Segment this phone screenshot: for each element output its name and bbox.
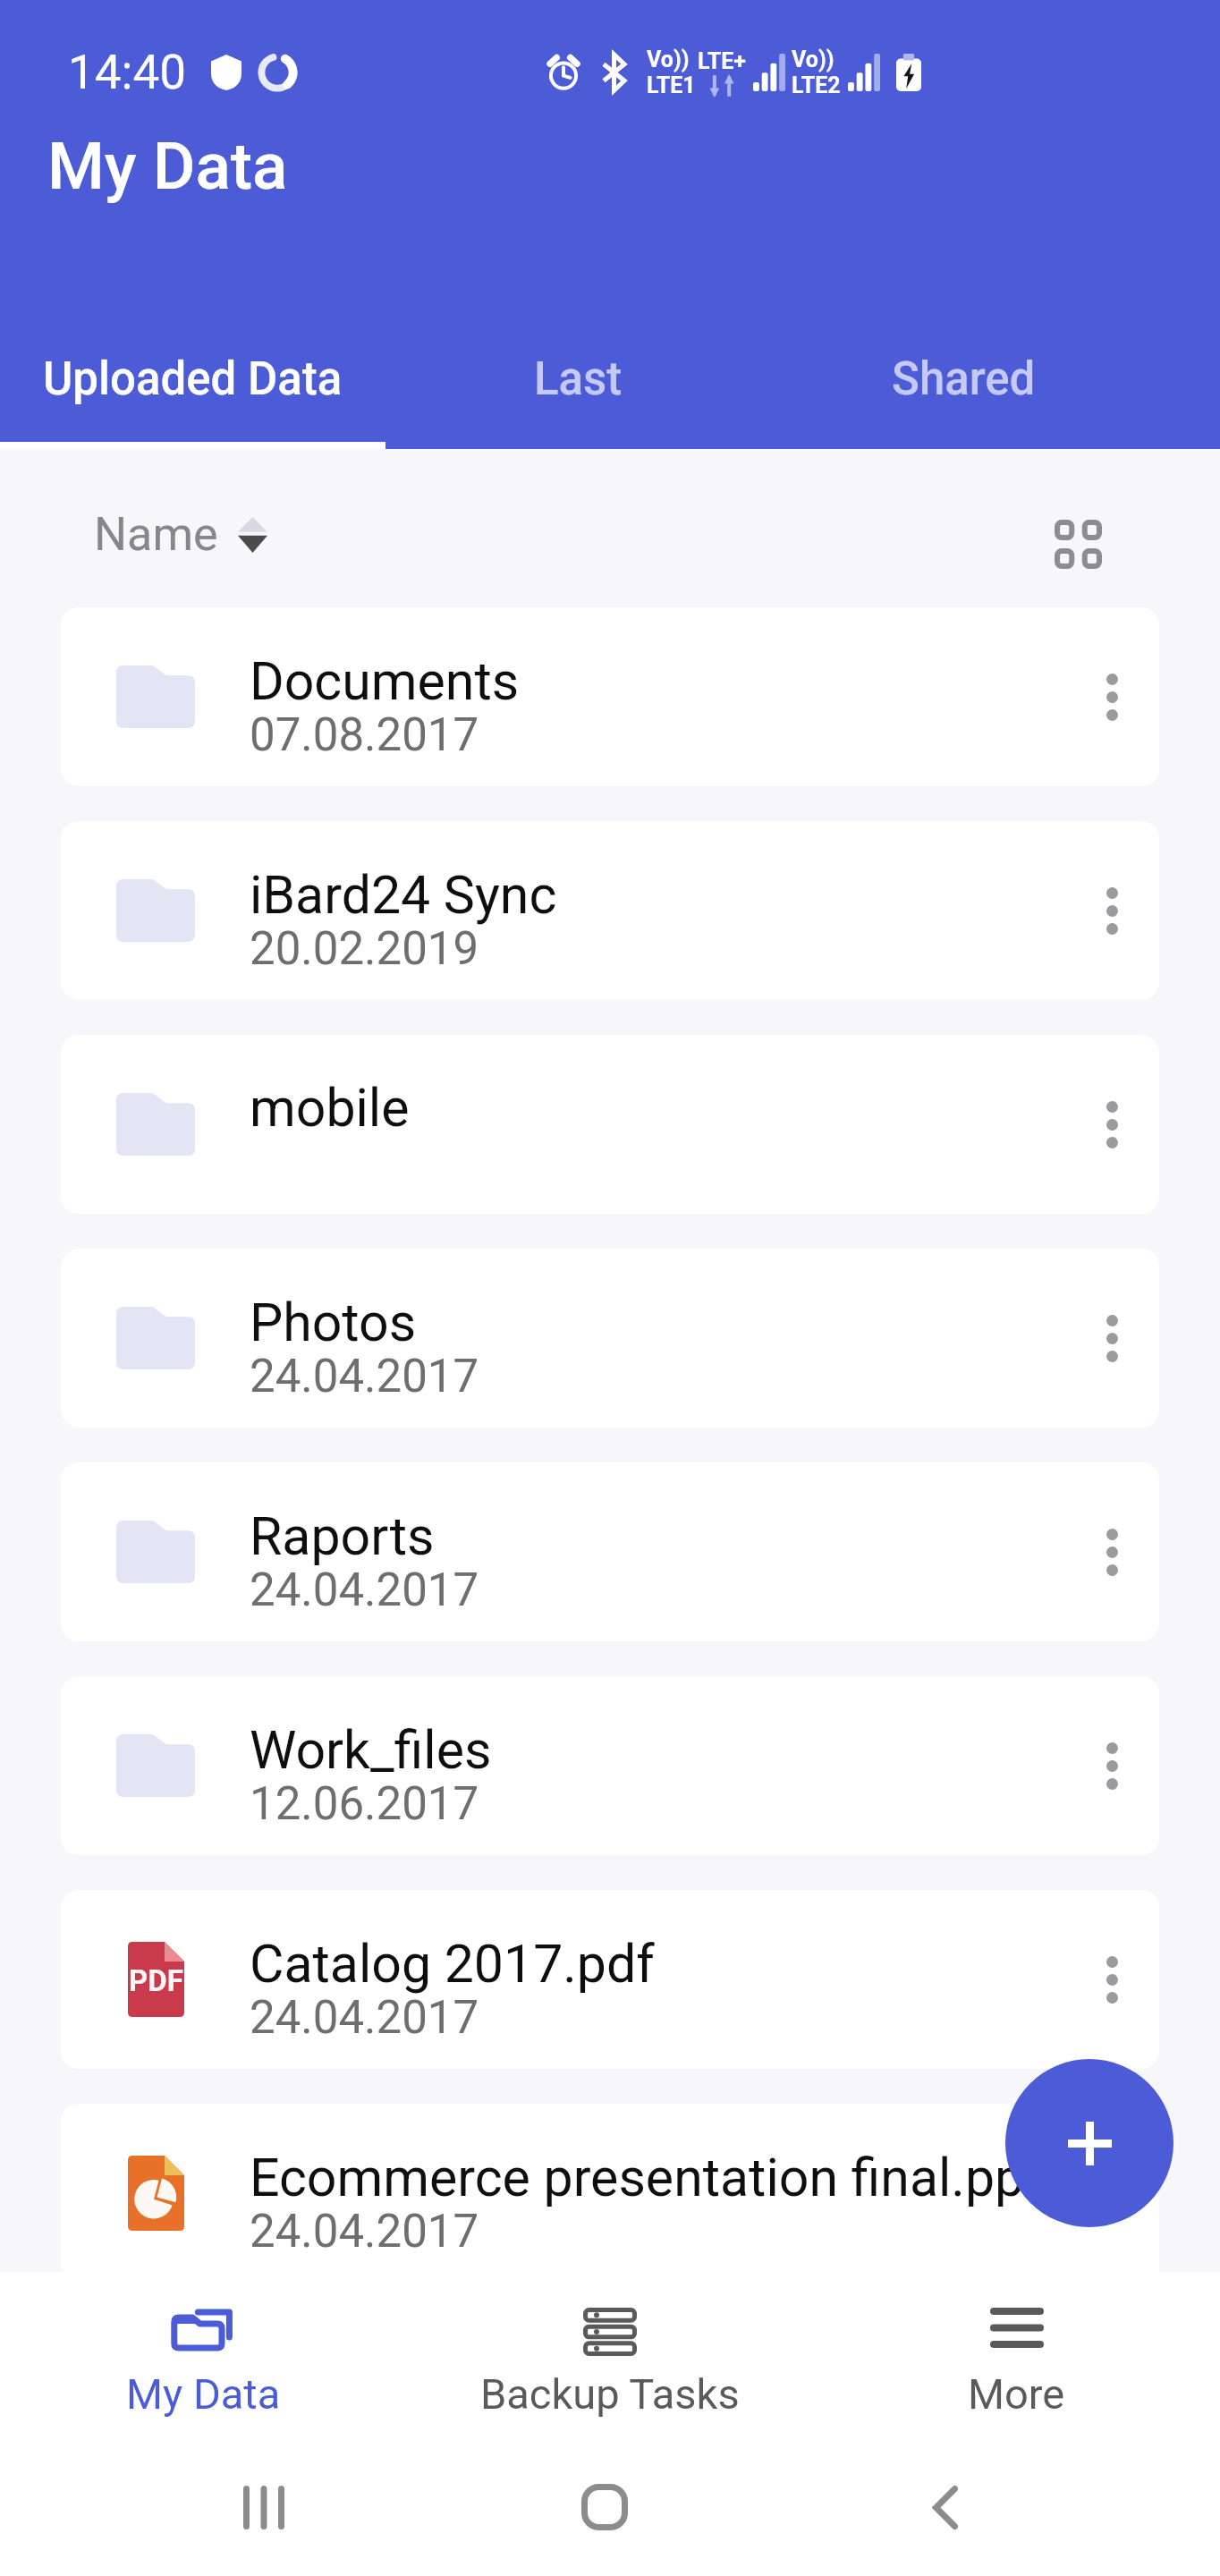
button[interactable]: My Data [0, 2272, 406, 2446]
staticText: LTE+ [698, 48, 746, 74]
staticText: 24.04.2017 [250, 2205, 479, 2258]
button[interactable]: Last [385, 324, 771, 435]
staticText: More [968, 2369, 1065, 2419]
staticText: Work_files [250, 1719, 492, 1781]
button[interactable]: PDF [61, 1890, 1159, 2069]
button[interactable]: Home [545, 2474, 665, 2540]
staticText: iBard24 Sync [250, 864, 557, 926]
button[interactable]: Recents [204, 2474, 324, 2540]
button[interactable]: More options [1058, 857, 1159, 964]
staticText: 07.08.2017 [250, 708, 479, 762]
staticText: Last [534, 352, 623, 406]
staticText: Backup Tasks [480, 2369, 740, 2419]
button[interactable]: Ecommerce presentation final.pptx [61, 2104, 1159, 2283]
button[interactable]: Backup Tasks [406, 2272, 813, 2446]
button[interactable]: Uploaded Data [0, 324, 385, 435]
button[interactable]: Name [85, 498, 276, 571]
staticText: Documents [250, 650, 520, 712]
staticText: LTE2 [792, 72, 841, 98]
button[interactable]: Photos [61, 1249, 1159, 1428]
button[interactable]: Documents [61, 607, 1159, 786]
button[interactable]: More options [1058, 2140, 1159, 2247]
button[interactable]: More options [1058, 643, 1159, 750]
button[interactable]: Work_files [61, 1676, 1159, 1855]
button[interactable]: Add [1005, 2059, 1173, 2227]
staticText: My Data [126, 2369, 281, 2419]
staticText: Ecommerce presentation final.pptx [250, 2147, 1068, 2208]
button[interactable]: Shared [771, 324, 1156, 435]
button[interactable]: More options [1058, 1284, 1159, 1392]
staticText: Vo)) [792, 47, 835, 72]
staticText: Raports [250, 1505, 435, 1567]
staticText: My Data [47, 128, 288, 205]
staticText: mobile [250, 1077, 410, 1139]
button[interactable]: More options [1058, 1498, 1159, 1606]
staticText: 20.02.2019 [250, 922, 479, 976]
staticText: Name [94, 507, 218, 562]
staticText: Vo)) [647, 47, 690, 72]
staticText: 24.04.2017 [250, 1991, 479, 2045]
button[interactable]: More options [1058, 1071, 1159, 1178]
button[interactable]: More options [1058, 1712, 1159, 1819]
button[interactable]: More [813, 2272, 1220, 2446]
staticText: Catalog 2017.pdf [250, 1933, 655, 1995]
staticText: Photos [250, 1292, 417, 1353]
staticText: 24.04.2017 [250, 1563, 479, 1617]
button[interactable]: Grid view [1040, 506, 1115, 581]
button[interactable]: More options [1058, 1926, 1159, 2033]
button[interactable]: Raports [61, 1462, 1159, 1641]
staticText: Shared [892, 352, 1036, 406]
button[interactable]: Back [885, 2474, 1005, 2540]
staticText: 24.04.2017 [250, 1350, 479, 1403]
button[interactable]: iBard24 Sync [61, 821, 1159, 1000]
staticText: LTE1 [647, 72, 696, 98]
staticText: 12.06.2017 [250, 1777, 479, 1831]
staticText: 14:40 [68, 45, 186, 100]
staticText: Uploaded Data [43, 352, 343, 406]
staticText: PDF [129, 1963, 183, 1998]
button[interactable]: mobile [61, 1035, 1159, 1214]
